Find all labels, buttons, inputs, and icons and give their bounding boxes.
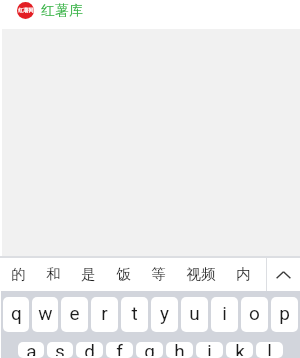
button[interactable]: 视频 [186, 258, 216, 291]
button[interactable]: w [32, 297, 58, 332]
staticText: s [55, 342, 65, 356]
button[interactable]: Collapse keyboard [267, 258, 300, 291]
button[interactable]: o [241, 297, 268, 332]
staticText: u [189, 302, 200, 324]
staticText: 红薯网 [18, 7, 34, 14]
staticText: d [84, 342, 95, 356]
staticText: t [131, 302, 138, 324]
staticText: g [144, 342, 155, 356]
staticText: 等 [151, 265, 166, 283]
button[interactable]: t [121, 297, 148, 332]
staticText: o [249, 302, 260, 324]
button[interactable]: y [151, 297, 178, 332]
button[interactable]: l [256, 342, 283, 358]
staticText: 饭 [116, 265, 131, 283]
button[interactable]: e [61, 297, 88, 332]
staticText: q [11, 302, 22, 324]
button[interactable]: u [181, 297, 208, 332]
staticText: f [116, 342, 123, 356]
staticText: p [279, 302, 290, 324]
staticText: 内 [236, 265, 251, 283]
button[interactable]: a [18, 342, 44, 358]
button[interactable]: f [106, 342, 133, 358]
staticText: 的 [11, 265, 26, 283]
staticText: k [235, 342, 245, 356]
staticText: 视频 [186, 265, 216, 283]
staticText: i [222, 302, 227, 324]
button[interactable]: 饭 [116, 258, 131, 291]
button[interactable]: h [166, 342, 193, 358]
staticText: 红薯库 [41, 2, 83, 19]
staticText: 和 [46, 265, 61, 283]
button[interactable]: r [91, 297, 118, 332]
button[interactable]: s [47, 342, 73, 358]
button[interactable]: d [76, 342, 103, 358]
button[interactable]: 和 [46, 258, 61, 291]
staticText: h [174, 342, 185, 356]
button[interactable]: 的 [11, 258, 26, 291]
staticText: 是 [81, 265, 96, 283]
staticText: a [26, 342, 37, 356]
button[interactable]: q [3, 297, 29, 332]
staticText: y [160, 302, 169, 324]
button[interactable]: k [226, 342, 253, 358]
button[interactable]: 等 [151, 258, 166, 291]
button[interactable]: 内 [236, 258, 251, 291]
button[interactable]: App logo [17, 2, 34, 19]
staticText: e [69, 302, 80, 324]
button[interactable]: i [211, 297, 238, 332]
button[interactable]: p [271, 297, 298, 332]
button[interactable]: g [136, 342, 163, 358]
staticText: j [207, 342, 212, 356]
staticText: r [101, 302, 108, 324]
staticText: w [38, 302, 53, 324]
button[interactable]: 是 [81, 258, 96, 291]
button[interactable]: j [196, 342, 223, 358]
staticText: l [267, 342, 272, 356]
